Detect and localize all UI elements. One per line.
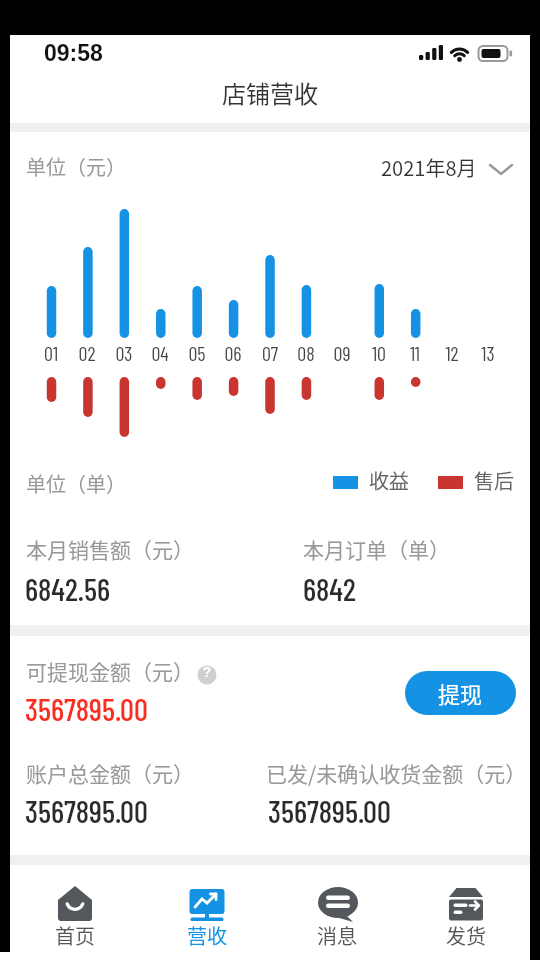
staticText: 13 — [472, 341, 504, 365]
staticText: 09:58 — [44, 40, 103, 66]
staticText: 10 — [363, 341, 395, 365]
staticText: 3567895.00 — [268, 792, 391, 829]
staticText: 店铺营收 — [0, 75, 540, 110]
staticText: 01 — [35, 341, 67, 365]
staticText: 06 — [217, 341, 249, 365]
staticText: 提现 — [438, 677, 483, 709]
staticText: 3567895.00 — [25, 690, 148, 727]
staticText: 首页 — [55, 921, 95, 950]
staticText: 6842.56 — [25, 570, 111, 607]
staticText: 2021年8月 — [381, 153, 477, 182]
staticText: 售后 — [474, 466, 514, 495]
staticText: 3567895.00 — [25, 792, 148, 829]
staticText: 6842 — [303, 570, 356, 607]
staticText: ? — [201, 664, 213, 680]
staticText: 营收 — [187, 921, 227, 950]
staticText: 本月销售额（元） — [26, 534, 194, 564]
staticText: 05 — [181, 341, 213, 365]
staticText: 本月订单（单） — [303, 534, 450, 564]
staticText: 02 — [71, 341, 103, 365]
staticText: 09 — [326, 341, 358, 365]
staticText: 收益 — [369, 466, 409, 495]
staticText: 04 — [144, 341, 176, 365]
staticText: 可提现金额（元） — [26, 656, 194, 686]
staticText: 07 — [254, 341, 286, 365]
staticText: 账户总金额（元） — [26, 758, 194, 788]
staticText: 08 — [290, 341, 322, 365]
staticText: 已发/未确认收货金额（元） — [266, 758, 527, 788]
staticText: 11 — [399, 341, 431, 365]
staticText: 03 — [108, 341, 140, 365]
staticText: 单位（单） — [26, 469, 126, 498]
staticText: 消息 — [317, 921, 357, 950]
staticText: 发货 — [446, 921, 486, 950]
staticText: 12 — [436, 341, 468, 365]
staticText: 单位（元） — [26, 152, 126, 181]
